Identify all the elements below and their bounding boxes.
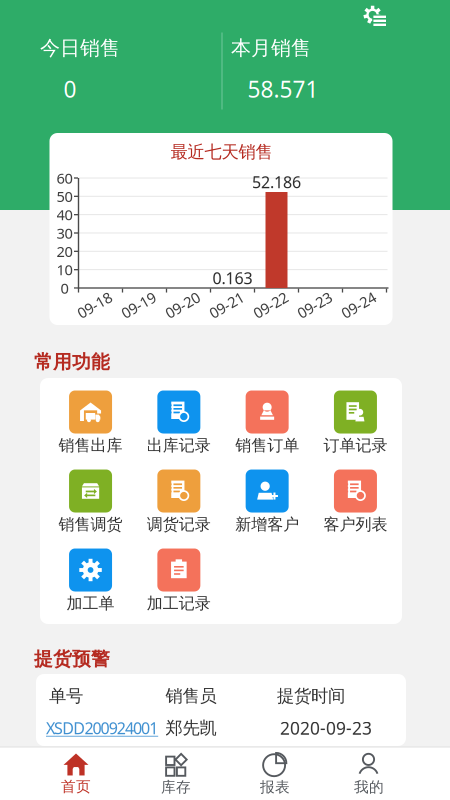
button[interactable]: XSDD200924001	[46, 715, 246, 741]
button[interactable]: 首页	[20, 749, 132, 799]
staticText: 50	[56, 187, 72, 206]
staticText: 40	[56, 205, 72, 224]
staticText: 0	[60, 278, 68, 298]
staticText: 提货时间	[277, 685, 345, 707]
staticText: 加工记录	[147, 594, 211, 613]
staticText: 销售员	[165, 685, 216, 707]
button[interactable]: 出库记录	[135, 390, 223, 457]
staticText: 调货记录	[147, 515, 211, 534]
staticText: 常用功能	[34, 350, 110, 373]
staticText: 30	[56, 223, 72, 243]
staticText: 10	[56, 260, 72, 279]
staticText: 加工单	[67, 594, 115, 613]
staticText: 首页	[61, 777, 91, 795]
staticText: 订单记录	[323, 436, 387, 455]
staticText: 出库记录	[147, 436, 211, 455]
staticText: 今日销售	[40, 36, 120, 60]
staticText: XSDD200924001	[46, 717, 158, 739]
staticText: 最近七天销售	[170, 141, 272, 163]
staticText: 新增客户	[235, 515, 299, 534]
staticText: 销售调货	[59, 515, 123, 534]
staticText: 报表	[260, 778, 290, 796]
button[interactable]: 新增客户	[223, 469, 311, 536]
button[interactable]: 销售调货	[46, 469, 135, 536]
staticText: 09-23	[296, 295, 333, 315]
staticText: 客户列表	[323, 515, 387, 534]
staticText: 09-18	[76, 295, 113, 315]
staticText: 09-20	[164, 295, 201, 315]
staticText: 20	[56, 242, 72, 261]
staticText: 2020-09-23	[280, 716, 372, 739]
staticText: 提货预警	[34, 647, 110, 670]
button[interactable]: 报表	[219, 749, 331, 799]
button[interactable]: 调货记录	[135, 469, 223, 536]
staticText: 郑先凯	[165, 717, 216, 739]
staticText: 单号	[49, 685, 83, 707]
staticText: 09-24	[340, 295, 377, 315]
button[interactable]: 客户列表	[311, 469, 400, 536]
staticText: 09-21	[208, 295, 245, 315]
button[interactable]: 设置	[353, 0, 397, 37]
staticText: 09-22	[252, 295, 289, 315]
staticText: 52.186	[252, 171, 301, 193]
staticText: 0.163	[212, 267, 252, 289]
button[interactable]: 加工单	[46, 548, 135, 615]
staticText: 0	[63, 74, 76, 104]
staticText: 58.571	[247, 74, 318, 104]
button[interactable]: 销售出库	[46, 390, 135, 457]
staticText: 我的	[354, 778, 384, 796]
button[interactable]: 我的	[313, 749, 425, 799]
staticText: 09-19	[120, 295, 157, 315]
staticText: 60	[56, 168, 72, 188]
button[interactable]: 库存	[120, 749, 232, 799]
staticText: 销售出库	[59, 436, 123, 455]
staticText: 库存	[161, 778, 191, 796]
button[interactable]: 加工记录	[135, 548, 223, 615]
button[interactable]: 订单记录	[311, 390, 400, 457]
staticText: 本月销售	[231, 36, 311, 60]
button[interactable]: 销售订单	[223, 390, 311, 457]
staticText: 销售订单	[235, 436, 299, 455]
